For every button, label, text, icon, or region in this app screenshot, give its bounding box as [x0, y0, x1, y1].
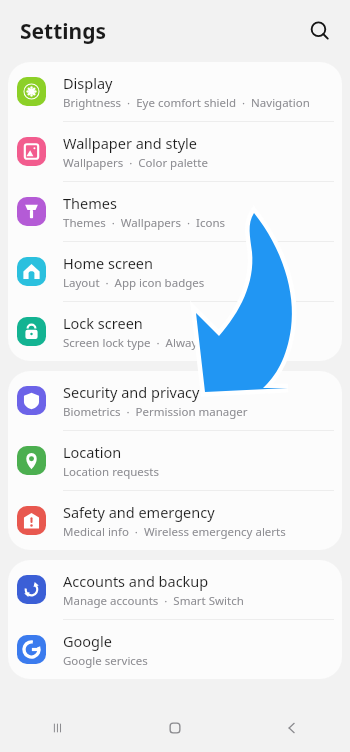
staticText: Location	[63, 442, 122, 462]
staticText: Wallpaper and style	[63, 133, 197, 153]
button[interactable]: Safety and emergency	[8, 491, 342, 550]
button[interactable]: Google	[8, 620, 342, 679]
staticText: Location requests	[63, 464, 159, 480]
staticText: Themes	[63, 193, 117, 213]
button[interactable]: Themes	[8, 182, 342, 241]
staticText: Biometrics · Permission manager	[63, 404, 248, 420]
staticText: Brightness · Eye comfort shield · Naviga…	[63, 95, 330, 111]
staticText: Google services	[63, 653, 148, 669]
button[interactable]: Home screen	[8, 242, 342, 301]
button[interactable]: Accounts and backup	[8, 560, 342, 619]
staticText: Layout · App icon badges	[63, 275, 205, 291]
button[interactable]: Recents	[0, 704, 116, 752]
staticText: Display	[63, 73, 113, 93]
staticText: Wallpapers · Color palette	[63, 155, 208, 171]
button[interactable]: Location	[8, 431, 342, 490]
staticText: Google	[63, 631, 112, 651]
button[interactable]: Back	[233, 704, 350, 752]
button[interactable]: Display	[8, 62, 342, 121]
button[interactable]: Wallpaper and style	[8, 122, 342, 181]
staticText: Themes · Wallpapers · Icons	[63, 215, 225, 231]
button[interactable]: Security and privacy	[8, 371, 342, 430]
staticText: Lock screen	[63, 313, 143, 333]
staticText: Safety and emergency	[63, 502, 215, 522]
staticText: Manage accounts · Smart Switch	[63, 593, 244, 609]
staticText: Home screen	[63, 253, 153, 273]
staticText: Security and privacy	[63, 382, 200, 402]
button[interactable]: Lock screen	[8, 302, 342, 361]
button[interactable]: Home	[116, 704, 233, 752]
staticText: Screen lock type · Always On Display	[63, 335, 265, 351]
button[interactable]: Search	[298, 9, 342, 53]
staticText: Settings	[20, 17, 107, 46]
staticText: Accounts and backup	[63, 571, 209, 591]
staticText: Medical info · Wireless emergency alerts	[63, 524, 286, 540]
